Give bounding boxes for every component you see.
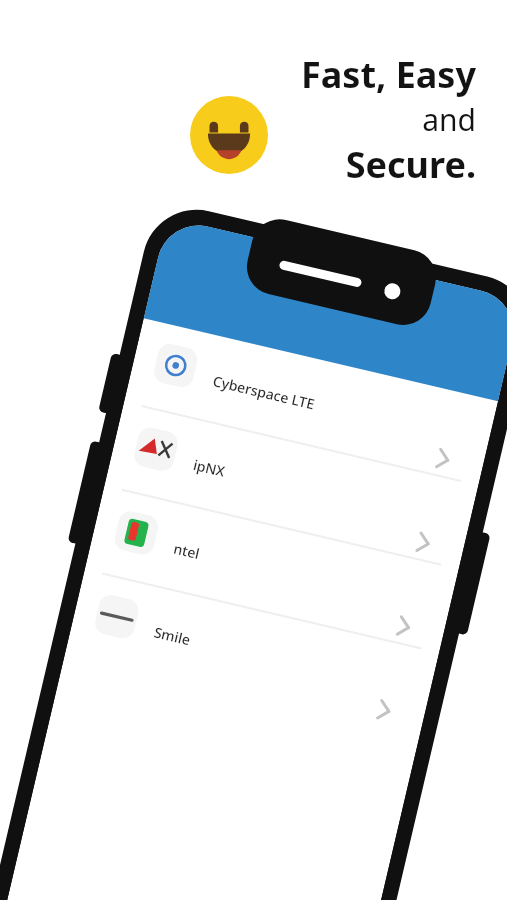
staticText: and — [422, 99, 476, 140]
button[interactable]: Fast, Easy — [252, 50, 476, 189]
staticText: Fast, Easy — [301, 50, 476, 99]
button[interactable]: Smiling face emoji — [190, 96, 268, 174]
staticText: Secure. — [345, 140, 476, 189]
button[interactable]: Phone preview of internet provider list — [0, 0, 507, 900]
